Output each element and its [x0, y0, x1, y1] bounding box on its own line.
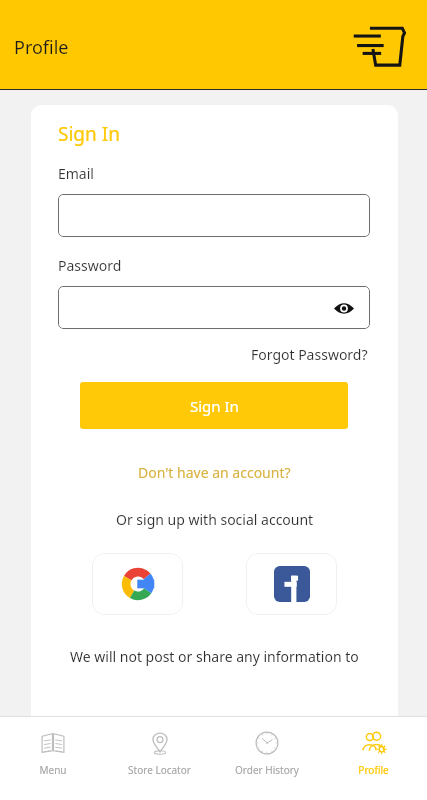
- staticText: Email: [58, 164, 94, 183]
- button[interactable]: Menu: [0, 717, 106, 800]
- staticText: Profile: [14, 35, 69, 60]
- button[interactable]: Sign in with Google: [92, 553, 183, 615]
- button[interactable]: Profile: [320, 717, 427, 800]
- staticText: Sign In: [58, 121, 120, 147]
- button[interactable]: Show password: [332, 296, 356, 320]
- button[interactable]: Sign In: [80, 382, 348, 429]
- staticText: Store Locator: [128, 763, 191, 777]
- staticText: Or sign up with social account: [116, 510, 314, 529]
- staticText: Forgot Password?: [251, 345, 368, 364]
- button[interactable]: Store Locator: [106, 717, 213, 800]
- staticText: We will not post or share any informatio…: [70, 647, 359, 666]
- staticText: Order History: [235, 763, 299, 777]
- staticText: Password: [58, 256, 122, 275]
- button[interactable]: App logo: [353, 17, 409, 73]
- button[interactable]: Order History: [213, 717, 320, 800]
- staticText: Sign In: [190, 396, 239, 416]
- staticText: Profile: [358, 763, 389, 777]
- button[interactable]: Sign in with Facebook: [246, 553, 337, 615]
- button[interactable]: Show password: [58, 286, 370, 329]
- button[interactable]: Don't have an account?: [135, 460, 294, 485]
- staticText: Don't have an account?: [138, 463, 291, 482]
- button[interactable]: Forgot Password?: [249, 343, 370, 366]
- staticText: Menu: [39, 763, 67, 777]
- button[interactable]: [58, 194, 370, 237]
